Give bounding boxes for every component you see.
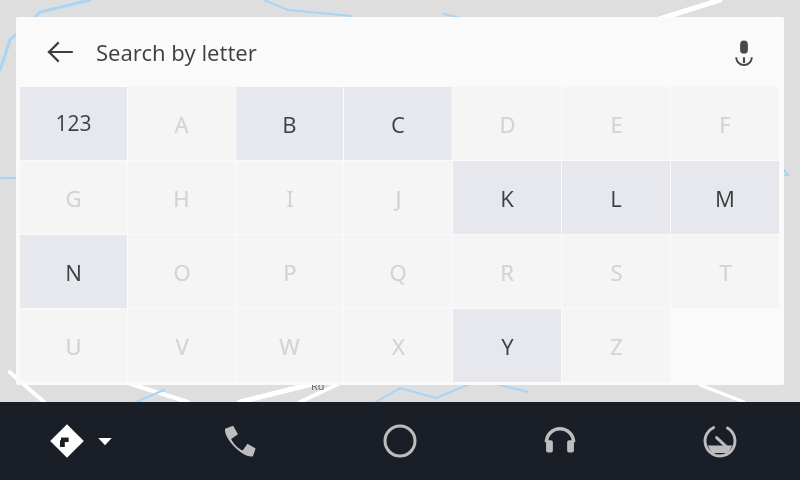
staticText: R bbox=[500, 257, 514, 287]
button[interactable]: Y bbox=[453, 309, 561, 382]
button[interactable]: Home bbox=[320, 402, 480, 480]
staticText: I bbox=[286, 183, 294, 213]
button[interactable]: Media bbox=[480, 402, 640, 480]
button[interactable]: G bbox=[20, 161, 127, 234]
button[interactable]: O bbox=[128, 235, 235, 308]
staticText: F bbox=[719, 109, 731, 139]
staticText: P bbox=[283, 257, 297, 287]
button[interactable]: Car info bbox=[640, 402, 800, 480]
staticText: G bbox=[65, 183, 82, 213]
staticText: X bbox=[392, 331, 405, 361]
button[interactable]: A bbox=[128, 87, 235, 160]
staticText: Rd bbox=[311, 378, 325, 393]
staticText: M bbox=[715, 183, 735, 213]
button[interactable]: L bbox=[562, 161, 670, 234]
staticText: O bbox=[173, 257, 191, 287]
button[interactable]: N bbox=[20, 235, 127, 308]
button[interactable]: W bbox=[236, 309, 343, 382]
button[interactable]: Phone bbox=[160, 402, 320, 480]
button[interactable]: E bbox=[562, 87, 670, 160]
button[interactable]: M bbox=[671, 161, 779, 234]
button[interactable]: K bbox=[453, 161, 561, 234]
staticText: T bbox=[719, 257, 732, 287]
button[interactable]: Back bbox=[32, 24, 88, 80]
button[interactable]: X bbox=[344, 309, 452, 382]
button[interactable]: U bbox=[20, 309, 127, 382]
staticText: 123 bbox=[55, 109, 92, 138]
button[interactable]: Z bbox=[562, 309, 670, 382]
button[interactable]: B bbox=[236, 87, 343, 160]
button[interactable]: 123 bbox=[20, 87, 127, 160]
staticText: Search by letter bbox=[96, 37, 257, 67]
button[interactable]: Navigation bbox=[0, 402, 160, 480]
button[interactable]: D bbox=[453, 87, 561, 160]
staticText: J bbox=[395, 183, 402, 213]
button[interactable]: C bbox=[344, 87, 452, 160]
button[interactable]: P bbox=[236, 235, 343, 308]
staticText: L bbox=[610, 183, 622, 213]
staticText: V bbox=[175, 331, 189, 361]
button[interactable]: R bbox=[453, 235, 561, 308]
staticText: N bbox=[65, 257, 82, 287]
staticText: E bbox=[610, 109, 623, 139]
staticText: B bbox=[282, 109, 297, 139]
button[interactable]: H bbox=[128, 161, 235, 234]
staticText: K bbox=[500, 183, 514, 213]
staticText: C bbox=[391, 109, 405, 139]
staticText: W bbox=[279, 331, 300, 361]
button[interactable]: Voice search bbox=[716, 24, 772, 80]
staticText: D bbox=[499, 109, 516, 139]
staticText: A bbox=[174, 109, 189, 139]
staticText: Y bbox=[501, 331, 514, 361]
staticText: Q bbox=[389, 257, 407, 287]
button[interactable]: Q bbox=[344, 235, 452, 308]
staticText: S bbox=[610, 257, 623, 287]
staticText: U bbox=[65, 331, 82, 361]
staticText: H bbox=[173, 183, 190, 213]
staticText: Z bbox=[610, 331, 623, 361]
